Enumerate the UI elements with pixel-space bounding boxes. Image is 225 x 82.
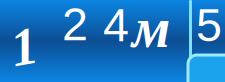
staticText: 5 [196, 0, 222, 51]
staticText: м [132, 0, 170, 59]
staticText: 4 [103, 0, 129, 51]
staticText: 1 [11, 17, 38, 76]
staticText: 2 [62, 0, 88, 50]
